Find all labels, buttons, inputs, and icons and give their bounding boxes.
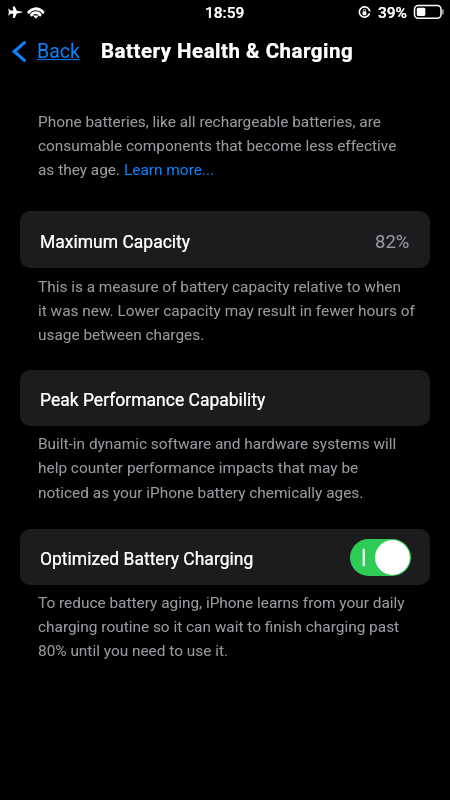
staticText: Phone batteries, like all rechargeable b… bbox=[38, 113, 381, 131]
staticText: Learn more... bbox=[124, 161, 215, 179]
button[interactable]: Maximum Capacity bbox=[20, 211, 430, 268]
staticText: Optimized Battery Charging bbox=[40, 549, 254, 570]
staticText: This is a measure of battery capacity re… bbox=[38, 278, 402, 296]
staticText: Peak Performance Capability bbox=[40, 390, 266, 411]
staticText: as they age. bbox=[38, 161, 124, 179]
staticText: charging routine so it can wait to finis… bbox=[38, 618, 400, 636]
staticText: To reduce battery aging, iPhone learns f… bbox=[38, 594, 405, 612]
button[interactable]: Peak Performance Capability bbox=[20, 370, 430, 426]
staticText: consumable components that become less e… bbox=[38, 137, 397, 155]
staticText: 82% bbox=[375, 231, 410, 253]
staticText: it was new. Lower capacity may result in… bbox=[38, 302, 415, 320]
staticText: help counter performance impacts that ma… bbox=[38, 459, 359, 477]
staticText: noticed as your iPhone battery chemicall… bbox=[38, 484, 364, 502]
button[interactable]: Learn more... bbox=[124, 161, 215, 179]
button[interactable]: Optimized Battery Charging, on bbox=[350, 539, 411, 576]
staticText: Maximum Capacity bbox=[40, 232, 191, 253]
staticText: 80% until you need to use it. bbox=[38, 642, 229, 660]
staticText: usage between charges. bbox=[38, 326, 205, 344]
staticText: 39% bbox=[378, 4, 408, 22]
button[interactable]: Back bbox=[0, 32, 88, 70]
staticText: Back bbox=[37, 40, 80, 63]
staticText: Battery Health & Charging bbox=[101, 39, 354, 63]
button[interactable]: Optimized Battery Charging bbox=[20, 529, 430, 585]
staticText: Built-in dynamic software and hardware s… bbox=[38, 435, 397, 453]
staticText: 18:59 bbox=[205, 4, 245, 22]
